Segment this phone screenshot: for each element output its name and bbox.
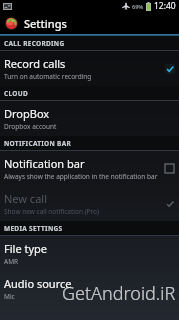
staticText: 69% [132, 3, 144, 10]
staticText: AMR [4, 257, 19, 266]
staticText: New call [4, 191, 47, 206]
button[interactable]: New call [0, 186, 179, 221]
staticText: Turn on automatic recording [4, 72, 92, 81]
staticText: File type [4, 241, 47, 256]
staticText: MEDIA SETTINGS [4, 224, 63, 233]
staticText: Settings [24, 16, 67, 31]
button[interactable]: Checked, unavailable [164, 198, 175, 209]
button[interactable]: Settings [0, 12, 179, 34]
button[interactable]: Disabled, unchecked [164, 163, 175, 174]
staticText: Audio source [4, 276, 72, 291]
button[interactable]: Notification bar [0, 151, 179, 186]
staticText: Record calls [4, 56, 66, 71]
staticText: Mic [4, 292, 15, 301]
staticText: Show new call notification (Pro) [4, 207, 99, 216]
button[interactable]: Enabled, checked [164, 63, 175, 74]
button[interactable]: Audio source [0, 271, 179, 306]
staticText: GetAndroid.iR [62, 281, 176, 306]
staticText: NOTIFICATION BAR [4, 139, 72, 148]
button[interactable]: File type [0, 236, 179, 271]
staticText: Dropbox account [4, 122, 57, 131]
staticText: CALL RECORDING [4, 39, 65, 48]
staticText: Notification bar [4, 156, 85, 171]
staticText: 12:40 [154, 0, 176, 12]
button[interactable]: Record calls [0, 51, 179, 86]
staticText: CLOUD [4, 89, 28, 98]
staticText: Always show the application in the notif… [4, 172, 158, 181]
button[interactable]: DropBox [0, 101, 179, 136]
staticText: DropBox [4, 106, 50, 121]
